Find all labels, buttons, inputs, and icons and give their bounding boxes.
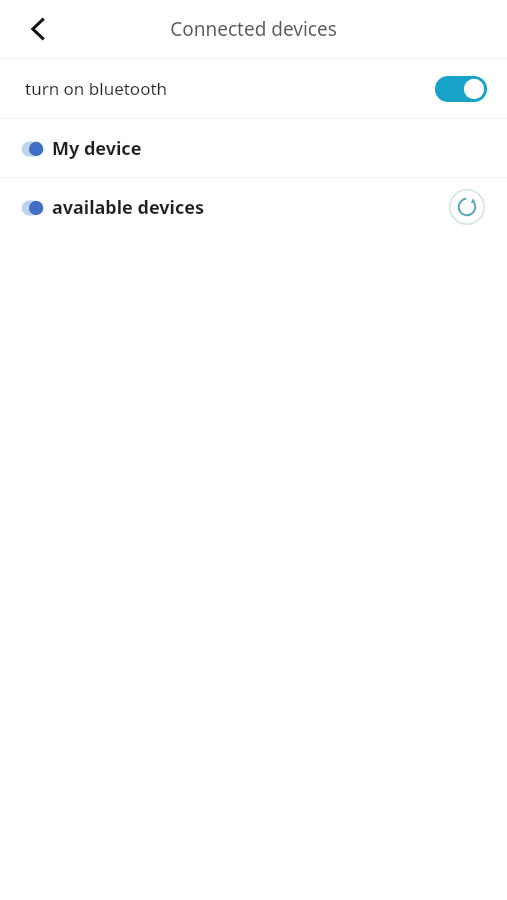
button[interactable]: Refresh (449, 189, 485, 225)
staticText: My device (52, 136, 142, 161)
staticText: Connected devices (0, 16, 507, 42)
button[interactable]: turn on bluetooth (0, 59, 507, 118)
button[interactable]: available devices (0, 178, 507, 236)
staticText: available devices (52, 195, 205, 220)
button[interactable]: Bluetooth toggle (435, 76, 487, 102)
button[interactable]: My device (0, 119, 507, 177)
button[interactable]: Back (14, 5, 62, 53)
staticText: turn on bluetooth (25, 77, 168, 100)
